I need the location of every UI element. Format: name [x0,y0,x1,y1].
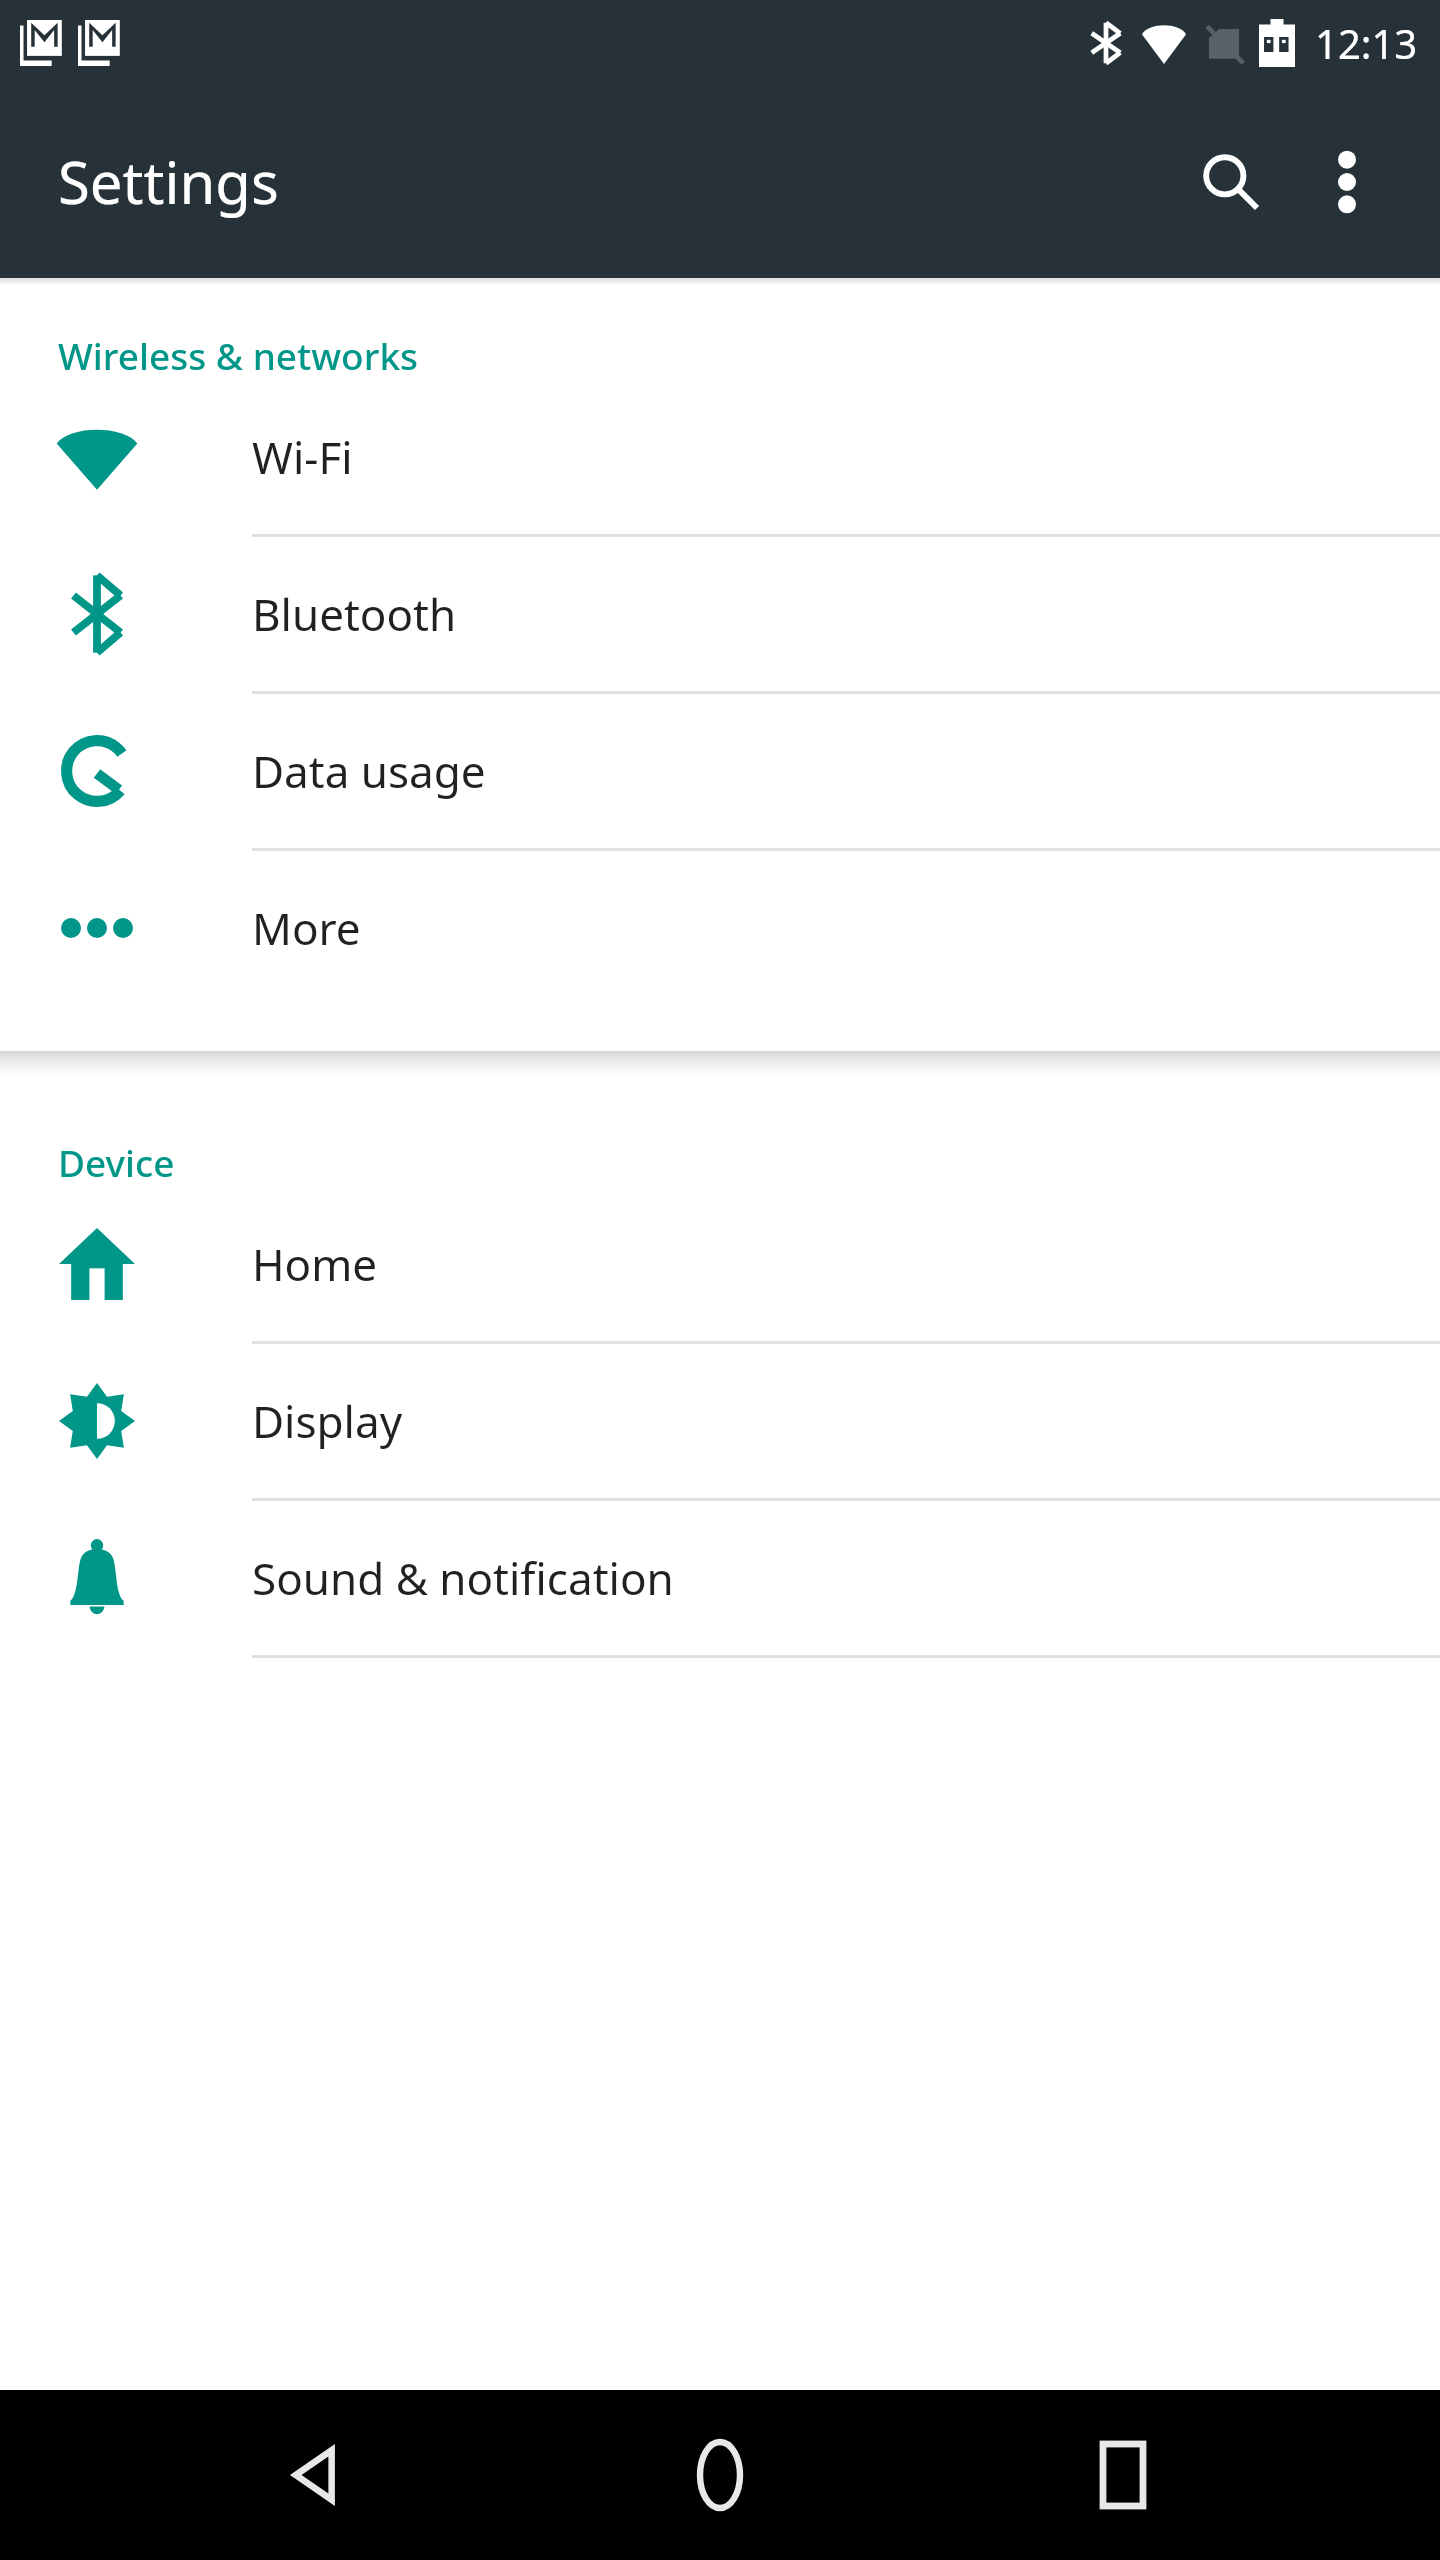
staticText: Settings [58,142,279,221]
staticText: Sound & notification [252,1548,674,1608]
button[interactable]: More options [1292,127,1402,237]
button[interactable]: Search [1176,127,1286,237]
staticText: Wireless & networks [58,330,419,380]
button[interactable]: Sound & notification [0,1501,1440,1658]
staticText: Data usage [252,741,486,801]
staticText: Bluetooth [252,584,457,644]
button[interactable]: More [0,851,1440,1005]
button[interactable]: Recent apps [1038,2390,1208,2560]
button[interactable]: Home [0,1187,1440,1344]
button[interactable]: Back [233,2390,403,2560]
button[interactable]: Display [0,1344,1440,1501]
staticText: Home [252,1234,378,1294]
button[interactable]: Data usage [0,694,1440,851]
staticText: Display [252,1391,403,1451]
staticText: Wi-Fi [252,427,353,487]
staticText: 12:13 [1315,16,1418,70]
button[interactable]: Wi-Fi [0,380,1440,537]
staticText: More [252,898,361,958]
button[interactable]: Home [635,2390,805,2560]
staticText: Device [58,1137,175,1187]
button[interactable]: Bluetooth [0,537,1440,694]
